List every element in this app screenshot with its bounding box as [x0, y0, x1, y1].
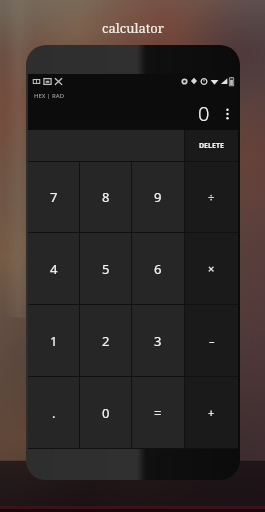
button[interactable]: –: [185, 305, 238, 376]
button[interactable]: ×: [185, 233, 238, 304]
button[interactable]: 5: [80, 233, 131, 304]
staticText: 8: [102, 188, 110, 206]
button[interactable]: 0: [80, 377, 131, 448]
staticText: 5: [102, 260, 110, 278]
button[interactable]: 9: [132, 162, 184, 232]
staticText: 4: [50, 260, 58, 278]
staticText: ÷: [208, 190, 215, 205]
staticText: 6: [154, 260, 162, 278]
staticText: 2: [102, 332, 110, 350]
staticText: 3: [154, 332, 162, 350]
button[interactable]: DELETE: [185, 130, 238, 161]
button[interactable]: +: [185, 377, 238, 448]
button[interactable]: 4: [28, 233, 79, 304]
staticText: DELETE: [199, 141, 224, 151]
staticText: 7: [50, 188, 58, 206]
staticText: +: [208, 405, 215, 420]
staticText: =: [154, 404, 162, 422]
button[interactable]: =: [132, 377, 184, 448]
staticText: 0: [198, 100, 210, 127]
staticText: 1: [50, 332, 58, 350]
staticText: ×: [208, 261, 215, 276]
button[interactable]: 6: [132, 233, 184, 304]
staticText: 0: [102, 404, 110, 422]
staticText: HEX | RAD: [34, 92, 65, 100]
staticText: 9: [154, 188, 162, 206]
button[interactable]: 2: [80, 305, 131, 376]
staticText: calculator: [102, 19, 164, 37]
button[interactable]: 1: [28, 305, 79, 376]
button[interactable]: 3: [132, 305, 184, 376]
button[interactable]: .: [28, 377, 79, 448]
button[interactable]: More options: [220, 103, 234, 125]
staticText: .: [52, 404, 56, 422]
button[interactable]: 7: [28, 162, 79, 232]
button[interactable]: 8: [80, 162, 131, 232]
button[interactable]: ÷: [185, 162, 238, 232]
staticText: –: [209, 333, 215, 348]
